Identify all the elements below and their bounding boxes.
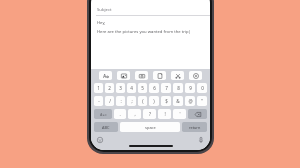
button[interactable]: / [105, 96, 114, 106]
button[interactable]: , [128, 109, 141, 119]
staticText: ABC [102, 125, 110, 130]
button[interactable]: Photos [117, 71, 130, 80]
button[interactable]: & [173, 96, 183, 106]
staticText: ( [142, 98, 144, 104]
staticText: 7 [165, 85, 168, 91]
button[interactable]: Subject [91, 4, 210, 15]
button[interactable]: $ [161, 96, 171, 106]
button[interactable]: " [197, 96, 207, 106]
button[interactable]: Hey, [91, 20, 210, 35]
button[interactable]: 7 [161, 83, 171, 93]
button[interactable]: Format text [99, 71, 112, 80]
staticText: . [119, 111, 121, 117]
button[interactable]: 9 [185, 83, 195, 93]
staticText: #+= [100, 112, 107, 117]
staticText: space [145, 125, 156, 130]
staticText: 6 [153, 85, 156, 91]
staticText: @ [188, 98, 193, 104]
button[interactable]: space [120, 122, 180, 132]
button[interactable]: Markup [171, 71, 184, 80]
staticText: Hey, [97, 20, 106, 26]
staticText: ) [153, 98, 155, 104]
staticText: ? [149, 111, 151, 117]
button[interactable]: Dictation [197, 136, 205, 144]
button[interactable]: ? [143, 109, 156, 119]
staticText: return [189, 125, 201, 130]
button[interactable]: ' [173, 109, 186, 119]
staticText: , [134, 111, 136, 117]
button[interactable]: 8 [173, 83, 183, 93]
button[interactable]: Emoji [96, 136, 104, 144]
staticText: $ [165, 98, 168, 104]
staticText: & [176, 98, 180, 104]
button[interactable]: 1 [94, 83, 103, 93]
button[interactable]: 3 [116, 83, 125, 93]
staticText: / [109, 98, 111, 104]
staticText: 9 [189, 85, 192, 91]
staticText: 1 [97, 85, 100, 91]
staticText: - [98, 98, 100, 104]
button[interactable]: Backspace [188, 109, 207, 119]
staticText: ' [179, 111, 181, 117]
staticText: 5 [141, 85, 144, 91]
button[interactable]: #+= [94, 109, 112, 119]
staticText: : [120, 98, 122, 104]
button[interactable]: return [182, 122, 207, 132]
button[interactable]: Camera [135, 71, 148, 80]
button[interactable]: 4 [127, 83, 136, 93]
button[interactable]: More [189, 71, 202, 80]
button[interactable]: - [94, 96, 103, 106]
staticText: 0 [201, 85, 204, 91]
staticText: 4 [130, 85, 133, 91]
button[interactable]: : [116, 96, 125, 106]
button[interactable]: 5 [138, 83, 147, 93]
button[interactable]: 2 [105, 83, 114, 93]
staticText: 8 [177, 85, 180, 91]
button[interactable]: ( [138, 96, 147, 106]
button[interactable]: . [114, 109, 126, 119]
button[interactable]: 6 [149, 83, 159, 93]
staticText: 2 [108, 85, 111, 91]
button[interactable]: Document [153, 71, 166, 80]
button[interactable]: ) [149, 96, 159, 106]
staticText: 3 [119, 85, 122, 91]
button[interactable]: 0 [197, 83, 207, 93]
button[interactable]: ABC [94, 122, 118, 132]
staticText: Here are the pictures you wanted from th… [97, 29, 191, 35]
staticText: ! [164, 111, 166, 117]
button[interactable]: ; [127, 96, 136, 106]
staticText: Subject [97, 7, 112, 13]
button[interactable]: ! [158, 109, 171, 119]
staticText: ; [131, 98, 133, 104]
button[interactable]: @ [185, 96, 195, 106]
staticText: " [201, 98, 203, 104]
